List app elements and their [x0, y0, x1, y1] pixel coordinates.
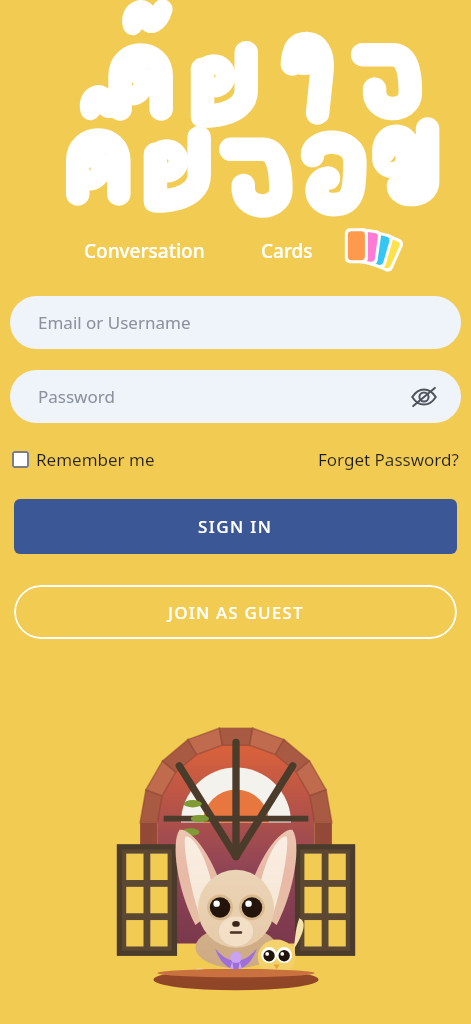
- staticText: Forget Password?: [318, 448, 459, 471]
- button[interactable]: Show password: [407, 380, 441, 414]
- staticText: Remember me: [36, 448, 155, 471]
- staticText: Password: [38, 385, 115, 408]
- staticText: Email or Username: [38, 311, 191, 334]
- button[interactable]: Remember me: [12, 448, 155, 471]
- button[interactable]: Forget Password?: [318, 448, 459, 471]
- button[interactable]: SIGN IN: [14, 499, 457, 554]
- button[interactable]: JOIN AS GUEST: [14, 585, 457, 639]
- button[interactable]: Email or Username: [10, 296, 461, 349]
- staticText: JOIN AS GUEST: [168, 601, 304, 624]
- staticText: Cards: [261, 238, 313, 264]
- staticText: SIGN IN: [198, 515, 273, 538]
- staticText: Conversation: [84, 238, 205, 264]
- button[interactable]: Password: [10, 370, 461, 423]
